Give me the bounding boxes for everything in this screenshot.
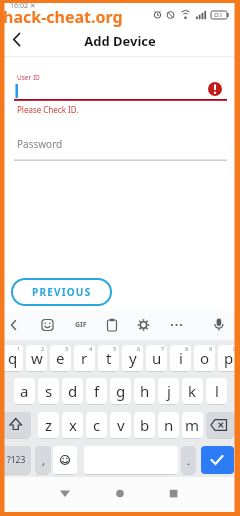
button[interactable]	[6, 30, 26, 50]
staticText: v	[117, 415, 125, 435]
staticText: 7	[161, 345, 165, 352]
staticText: a	[20, 381, 29, 401]
button[interactable]: w	[26, 345, 47, 371]
staticText: User ID	[17, 73, 40, 82]
staticText: s	[45, 381, 53, 401]
button[interactable]	[50, 484, 80, 506]
button[interactable]	[14, 80, 227, 100]
button[interactable]: y	[122, 345, 143, 371]
staticText: ,	[42, 453, 45, 468]
staticText: f	[94, 381, 100, 401]
staticText: 1	[17, 345, 21, 352]
button[interactable]	[53, 446, 77, 474]
staticText: k	[188, 381, 197, 401]
button[interactable]: e	[50, 345, 71, 371]
staticText: r	[81, 348, 88, 368]
button[interactable]: o	[194, 345, 215, 371]
button[interactable]	[105, 484, 135, 506]
button[interactable]: GIF	[70, 314, 92, 336]
button[interactable]: x	[62, 412, 83, 438]
button[interactable]: h	[134, 378, 155, 404]
button[interactable]: n	[158, 412, 179, 438]
staticText: ?123	[7, 454, 26, 466]
staticText: g	[116, 381, 126, 401]
button[interactable]: r	[74, 345, 95, 371]
staticText: b	[140, 415, 150, 435]
button[interactable]	[208, 314, 230, 336]
staticText: 9	[209, 345, 213, 352]
staticText: .	[187, 453, 190, 468]
button[interactable]: i	[170, 345, 191, 371]
staticText: j	[167, 381, 171, 401]
button[interactable]	[132, 314, 154, 336]
button[interactable]: u	[146, 345, 167, 371]
button[interactable]: d	[62, 378, 83, 404]
staticText: 0	[233, 345, 237, 352]
button[interactable]	[165, 314, 187, 336]
staticText: c	[93, 415, 101, 435]
button[interactable]: PREVIOUS	[12, 279, 111, 305]
staticText: Password	[17, 137, 63, 151]
button[interactable]: .	[181, 446, 196, 474]
staticText: 16:02 ✕	[10, 1, 36, 11]
button[interactable]: k	[182, 378, 203, 404]
staticText: 4	[89, 345, 93, 352]
button[interactable]: s	[38, 378, 59, 404]
staticText: h	[140, 381, 150, 401]
button[interactable]	[201, 446, 234, 474]
staticText: hack-cheat.org	[3, 6, 123, 28]
button[interactable]: g	[110, 378, 131, 404]
button[interactable]	[206, 412, 235, 438]
staticText: n	[164, 415, 174, 435]
staticText: Add Device	[0, 32, 240, 50]
staticText: d	[68, 381, 78, 401]
button[interactable]: l	[206, 378, 227, 404]
staticText: p	[224, 348, 234, 368]
staticText: e	[56, 348, 65, 368]
staticText: Please Check ID.	[17, 104, 79, 115]
staticText: m	[185, 415, 200, 435]
button[interactable]: m	[182, 412, 203, 438]
staticText: 6	[137, 345, 141, 352]
staticText: x	[69, 415, 77, 435]
button[interactable]: a	[14, 378, 35, 404]
button[interactable]	[159, 484, 189, 506]
staticText: PREVIOUS	[32, 285, 92, 299]
button[interactable]: ?123	[2, 446, 31, 474]
staticText: GIF	[75, 320, 87, 330]
button[interactable]	[37, 314, 59, 336]
staticText: y	[129, 348, 137, 368]
staticText: 3	[65, 345, 69, 352]
button[interactable]: p	[218, 345, 239, 371]
button[interactable]: j	[158, 378, 179, 404]
staticText: o	[200, 348, 210, 368]
staticText: z	[45, 415, 53, 435]
button[interactable]: ,	[35, 446, 51, 474]
staticText: 8	[185, 345, 189, 352]
staticText: u	[152, 348, 162, 368]
button[interactable]	[2, 412, 31, 438]
button[interactable]: q	[2, 345, 23, 371]
button[interactable]: t	[98, 345, 119, 371]
staticText: 5	[113, 345, 117, 352]
button[interactable]	[6, 314, 22, 336]
staticText: l	[215, 381, 219, 401]
button[interactable]: v	[110, 412, 131, 438]
staticText: t	[106, 348, 112, 368]
button[interactable]: f	[86, 378, 107, 404]
staticText: i	[179, 348, 183, 368]
button[interactable]	[101, 314, 123, 336]
button[interactable]: c	[86, 412, 107, 438]
staticText: 2	[41, 345, 45, 352]
staticText: w	[31, 348, 43, 368]
button[interactable]: z	[38, 412, 59, 438]
staticText: q	[8, 348, 18, 368]
button[interactable]: b	[134, 412, 155, 438]
button[interactable]	[14, 136, 227, 160]
